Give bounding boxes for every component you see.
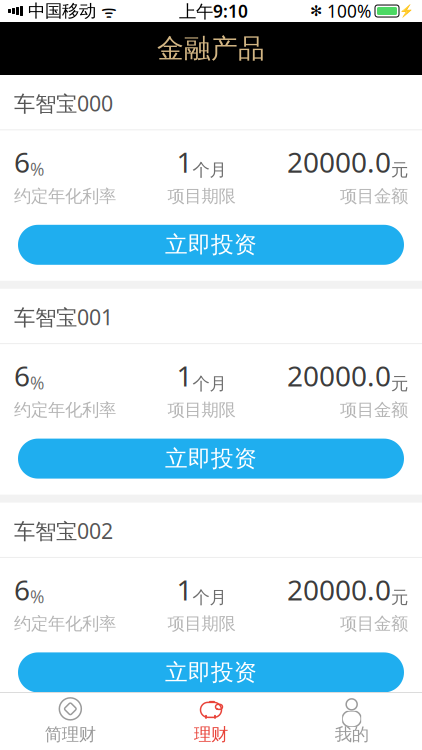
staticText: 20000.0 <box>287 571 391 608</box>
staticText: 理财 <box>194 724 228 745</box>
staticText: 约定年化利率 <box>14 399 116 421</box>
staticText: 100% <box>322 0 371 22</box>
staticText: 立即投资 <box>165 231 257 259</box>
staticText: 车智宝003 <box>14 730 113 750</box>
staticText: 个月 <box>192 373 226 394</box>
staticText: 项目金额 <box>340 399 408 421</box>
staticText: 元 <box>391 587 408 608</box>
staticText: 上午9:10 <box>179 0 248 22</box>
staticText: ✻ <box>310 3 322 19</box>
staticText: 立即投资 <box>165 445 257 472</box>
staticText: 项目期限 <box>167 185 235 207</box>
staticText: 1 <box>176 143 192 180</box>
staticText: ᯤ <box>96 0 117 22</box>
staticText: 项目期限 <box>167 399 235 421</box>
button[interactable]: 立即投资 <box>18 652 404 692</box>
staticText: 项目金额 <box>340 613 408 634</box>
staticText: 简理财 <box>45 724 96 745</box>
staticText: % <box>30 371 44 394</box>
staticText: 中国移动 <box>23 0 96 22</box>
staticText: 元 <box>391 373 408 394</box>
staticText: 6 <box>14 357 30 394</box>
staticText: 车智宝001 <box>14 303 113 331</box>
staticText: 20000.0 <box>287 143 391 180</box>
staticText: 车智宝002 <box>14 517 113 545</box>
staticText: 我的 <box>335 724 369 745</box>
staticText: % <box>30 157 44 180</box>
staticText: 6 <box>14 143 30 180</box>
button[interactable]: 立即投资 <box>18 439 404 479</box>
button[interactable]: 理财 <box>141 692 281 750</box>
staticText: 约定年化利率 <box>14 185 116 207</box>
staticText: 个月 <box>192 587 226 608</box>
staticText: ⚡ <box>399 4 414 18</box>
staticText: 车智宝000 <box>14 89 113 117</box>
staticText: 1 <box>176 357 192 394</box>
staticText: 立即投资 <box>165 658 257 686</box>
button[interactable]: 简理财 <box>0 692 141 750</box>
staticText: 元 <box>391 159 408 180</box>
staticText: 项目期限 <box>167 613 235 634</box>
staticText: 6 <box>14 571 30 608</box>
staticText: 1 <box>176 571 192 608</box>
button[interactable]: 我的 <box>281 692 422 750</box>
staticText: 约定年化利率 <box>14 613 116 634</box>
staticText: % <box>30 585 44 608</box>
staticText: 金融产品 <box>157 32 265 65</box>
staticText: 20000.0 <box>287 357 391 394</box>
staticText: 个月 <box>192 159 226 180</box>
button[interactable]: 立即投资 <box>18 225 404 265</box>
staticText: 项目金额 <box>340 185 408 207</box>
